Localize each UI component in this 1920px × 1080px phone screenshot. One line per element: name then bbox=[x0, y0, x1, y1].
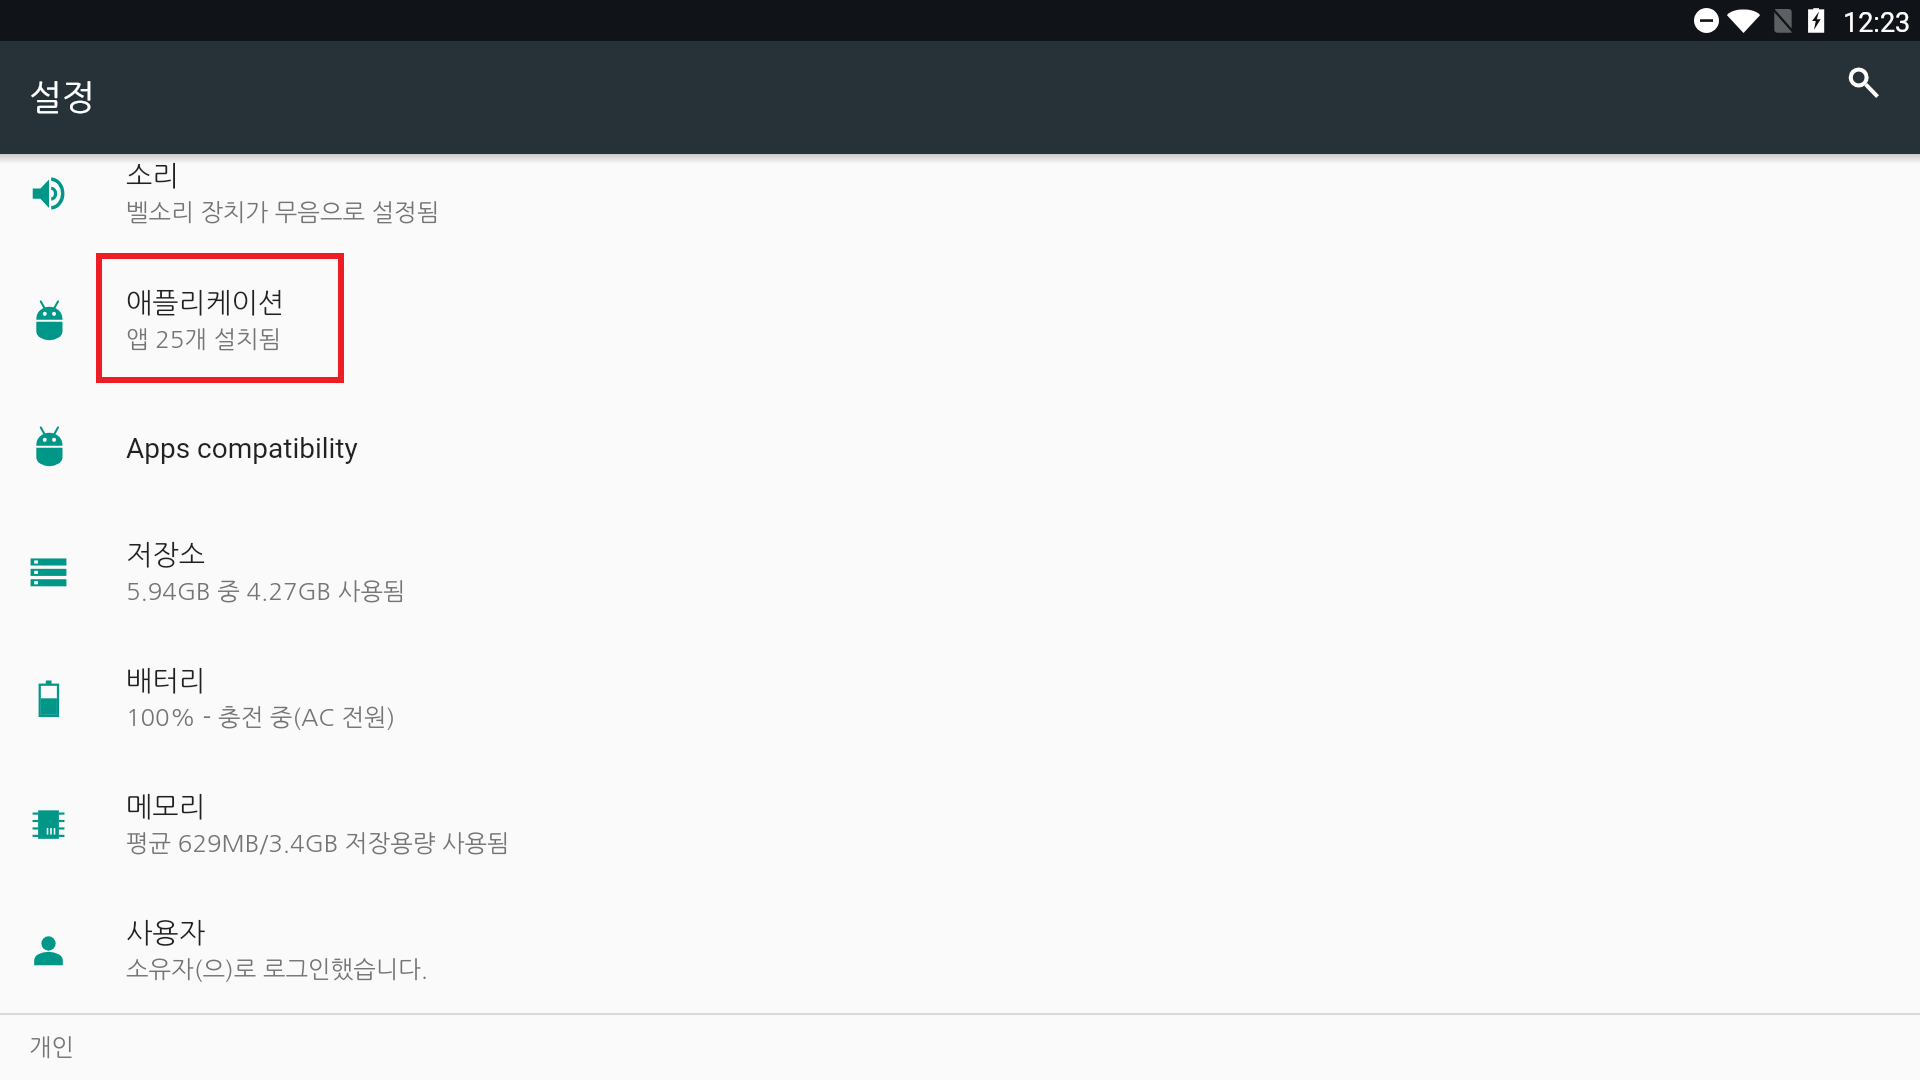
button[interactable]: Search bbox=[1835, 54, 1891, 110]
staticText: 설정 bbox=[29, 80, 95, 115]
staticText: 평균 629MB/3.4GB 저장용량 사용됨 bbox=[126, 831, 510, 855]
staticText: 5.94GB 중 4.27GB 사용됨 bbox=[126, 579, 406, 603]
staticText: 소유자(으)로 로그인했습니다. bbox=[126, 957, 429, 981]
staticText: 개인 bbox=[29, 1035, 75, 1059]
button[interactable]: 배터리 bbox=[0, 635, 1920, 761]
staticText: 메모리 bbox=[126, 793, 205, 821]
staticText: 벨소리 장치가 무음으로 설정됨 bbox=[126, 200, 440, 224]
button[interactable]: 사용자 bbox=[0, 887, 1920, 1013]
button[interactable]: 소리 bbox=[0, 154, 1920, 256]
staticText: 애플리케이션 bbox=[126, 289, 284, 317]
staticText: 저장소 bbox=[126, 541, 205, 569]
staticText: 사용자 bbox=[126, 919, 205, 947]
staticText: Apps compatibility bbox=[126, 432, 358, 465]
staticText: 앱 25개 설치됨 bbox=[126, 327, 282, 351]
staticText: 12:23 bbox=[1843, 7, 1911, 39]
button[interactable]: 저장소 bbox=[0, 509, 1920, 635]
button[interactable]: Apps compatibility bbox=[0, 383, 1920, 509]
button[interactable]: 메모리 bbox=[0, 761, 1920, 887]
staticText: 배터리 bbox=[126, 667, 205, 695]
staticText: 100% - 충전 중(AC 전원) bbox=[126, 705, 396, 729]
button[interactable]: 애플리케이션 bbox=[0, 257, 1920, 383]
staticText: 소리 bbox=[126, 162, 179, 190]
